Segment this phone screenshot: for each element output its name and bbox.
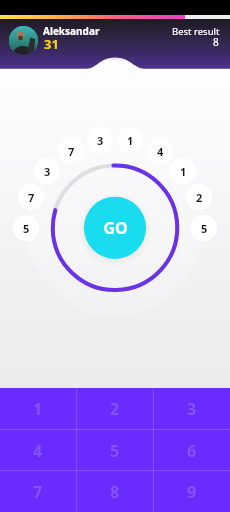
staticText: 4 (33, 440, 43, 462)
button[interactable]: 1 (0, 388, 76, 430)
staticText: 5 (201, 221, 208, 236)
staticText: 2 (110, 398, 120, 420)
staticText: 7 (33, 481, 43, 503)
staticText: 2 (196, 190, 203, 205)
staticText: Aleksandar (43, 24, 100, 38)
button[interactable]: 3 (34, 158, 60, 184)
button[interactable]: 8 (76, 471, 153, 512)
button[interactable]: 4 (0, 430, 76, 471)
staticText: 9 (187, 481, 197, 503)
button[interactable]: 2 (186, 184, 212, 210)
staticText: 1 (180, 164, 187, 179)
button[interactable]: 7 (0, 471, 76, 512)
button[interactable]: 7 (58, 138, 84, 164)
staticText: 3 (97, 133, 104, 148)
button[interactable]: 9 (153, 471, 230, 512)
button[interactable]: 4 (147, 138, 173, 164)
staticText: 5 (23, 221, 30, 236)
staticText: 7 (68, 144, 75, 159)
staticText: 31 (44, 35, 59, 53)
staticText: 4 (157, 144, 164, 159)
staticText: 1 (127, 133, 134, 148)
button[interactable]: Profile (9, 26, 38, 55)
button[interactable]: GO (83, 196, 147, 260)
button[interactable]: 5 (191, 215, 217, 241)
staticText: 6 (187, 440, 197, 462)
staticText: 8 (110, 481, 120, 503)
staticText: 3 (187, 398, 197, 420)
staticText: 1 (33, 398, 43, 420)
button[interactable]: 1 (170, 158, 196, 184)
button[interactable]: 1 (117, 127, 143, 153)
staticText: 3 (44, 164, 51, 179)
button[interactable]: 5 (76, 430, 153, 471)
button[interactable]: 3 (87, 127, 113, 153)
button[interactable]: 2 (76, 388, 153, 430)
staticText: 8 (213, 35, 219, 49)
button[interactable]: 5 (13, 215, 39, 241)
staticText: 7 (28, 190, 35, 205)
staticText: 5 (110, 440, 120, 462)
staticText: GO (103, 217, 128, 239)
button[interactable]: 6 (153, 430, 230, 471)
button[interactable]: 3 (153, 388, 230, 430)
button[interactable]: 7 (18, 184, 44, 210)
staticText: Best result (172, 25, 220, 38)
